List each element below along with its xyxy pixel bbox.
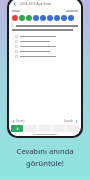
button[interactable]: Submit [11, 125, 23, 132]
staticText: Önceki [16, 119, 25, 123]
button[interactable] [12, 50, 78, 53]
button[interactable]: Question 9 [68, 15, 74, 21]
staticText: Sonraki [64, 119, 74, 123]
button[interactable] [12, 55, 78, 58]
button[interactable]: Question 4 [33, 15, 39, 21]
button[interactable]: Question 3 [26, 15, 32, 21]
staticText: Cevabını anında [16, 146, 74, 156]
button[interactable]: Question 2 [19, 15, 25, 21]
button[interactable]: Question 5 [40, 15, 46, 21]
staticText: görüntüle! [26, 158, 64, 168]
button[interactable] [12, 40, 78, 43]
button[interactable]: Back [12, 1, 18, 7]
button[interactable] [12, 45, 78, 48]
button[interactable]: Question 8 [61, 15, 67, 21]
button[interactable]: Question 7 [54, 15, 60, 21]
button[interactable]: Sonraki [64, 119, 78, 123]
button[interactable]: Question 6 [47, 15, 53, 21]
staticText: 2018-2019 Açık Sınav [20, 2, 52, 6]
button[interactable] [12, 35, 78, 38]
button[interactable]: Question 1 [12, 15, 18, 21]
button[interactable]: Önceki [12, 119, 25, 123]
staticText: 1. [12, 24, 15, 28]
